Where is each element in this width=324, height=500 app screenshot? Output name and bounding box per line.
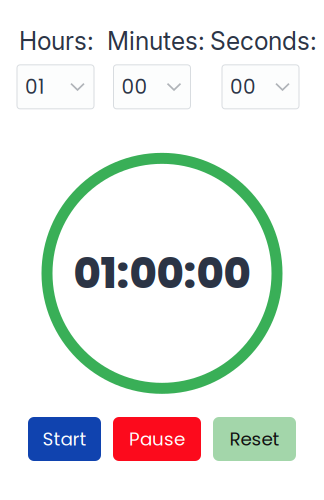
button[interactable]: Start bbox=[28, 417, 101, 461]
staticText: Pause bbox=[129, 426, 185, 452]
staticText: 01:00:00 bbox=[73, 244, 250, 302]
staticText: Start bbox=[42, 426, 86, 452]
button[interactable]: Pause bbox=[113, 417, 201, 461]
staticText: 00 bbox=[121, 73, 147, 101]
staticText: Seconds: bbox=[210, 26, 317, 56]
staticText: Minutes: bbox=[107, 26, 205, 56]
staticText: 00 bbox=[230, 73, 256, 101]
button[interactable]: Reset bbox=[213, 417, 296, 461]
button[interactable]: Hours: 01 bbox=[17, 65, 94, 109]
button[interactable]: Seconds: 00 bbox=[222, 65, 299, 109]
button[interactable]: Minutes: 00 bbox=[113, 65, 190, 109]
staticText: Reset bbox=[229, 426, 279, 452]
staticText: 01 bbox=[25, 73, 44, 101]
staticText: Hours: bbox=[19, 26, 94, 56]
